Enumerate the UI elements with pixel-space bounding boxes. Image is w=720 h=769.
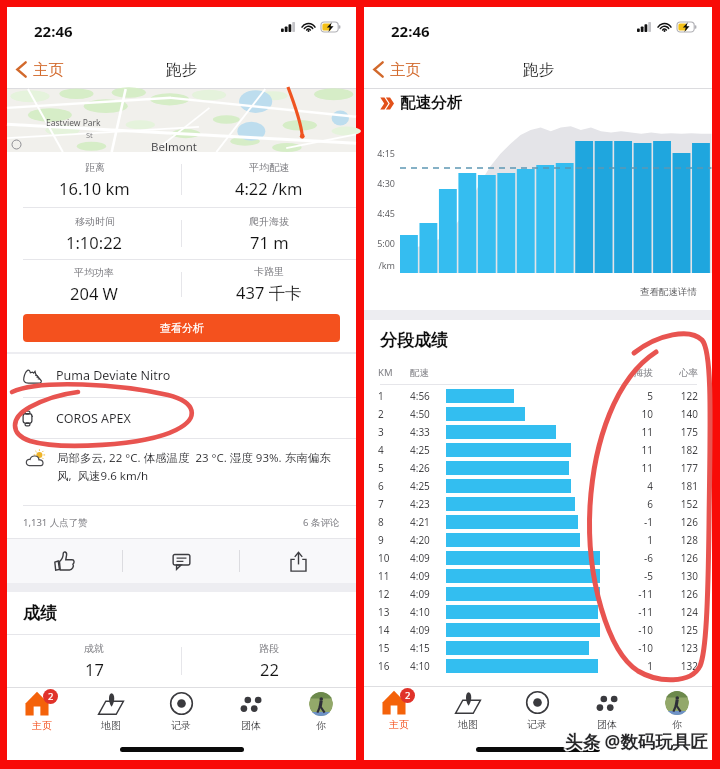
staticText: 204 W <box>70 282 118 304</box>
button[interactable]: 团体 <box>572 687 642 734</box>
staticText: 5 <box>378 461 384 475</box>
button[interactable]: 你 <box>642 687 712 734</box>
staticText: 主页 <box>389 718 409 731</box>
staticText: -10 <box>623 641 653 655</box>
staticText: 跑步 <box>166 60 197 80</box>
button[interactable]: 主页 <box>16 50 64 89</box>
staticText: 团体 <box>597 718 617 731</box>
staticText: 175 <box>664 425 698 439</box>
staticText: 1:10:22 <box>66 231 123 253</box>
staticText: 128 <box>664 533 698 547</box>
button[interactable]: Share <box>240 539 356 583</box>
button[interactable]: 主页 <box>373 50 421 89</box>
staticText: 头条 @数码玩具匠 <box>564 729 707 753</box>
staticText: 移动时间 <box>75 215 115 228</box>
staticText: 5 <box>623 389 653 403</box>
staticText: 爬升海拔 <box>249 215 289 228</box>
staticText: 1 <box>623 659 653 673</box>
staticText: 4:22 /km <box>235 177 303 199</box>
button[interactable]: Puma Deviate Nitro <box>7 354 356 397</box>
staticText: 15 <box>378 641 390 655</box>
staticText: 12 <box>378 587 390 601</box>
staticText: 头条 @数码玩具匠 <box>565 730 708 754</box>
staticText: 头条 @数码玩具匠 <box>566 728 709 752</box>
staticText: 4:25 <box>410 443 430 457</box>
staticText: 地图 <box>458 718 478 731</box>
staticText: 5:00 <box>364 237 395 249</box>
button[interactable]: 2 <box>7 688 76 735</box>
staticText: 126 <box>664 515 698 529</box>
staticText: 你 <box>672 718 682 731</box>
button[interactable]: COROS APEX <box>7 398 356 438</box>
staticText: -10 <box>623 623 653 637</box>
staticText: 4:30 <box>364 177 395 189</box>
staticText: 头条 @数码玩具匠 <box>566 729 709 753</box>
staticText: 4:56 <box>410 389 430 403</box>
staticText: 4:09 <box>410 587 430 601</box>
button[interactable]: 团体 <box>216 688 286 735</box>
staticText: 16 <box>378 659 390 673</box>
staticText: 你 <box>316 719 326 732</box>
staticText: 4:23 <box>410 497 430 511</box>
staticText: 跑步 <box>523 60 554 80</box>
button[interactable]: 记录 <box>146 688 216 735</box>
staticText: 主页 <box>33 60 64 80</box>
staticText: 122 <box>664 389 698 403</box>
staticText: 1 <box>623 533 653 547</box>
staticText: Puma Deviate Nitro <box>56 367 171 384</box>
staticText: 4:15 <box>410 641 430 655</box>
button[interactable]: 2 <box>364 687 433 734</box>
staticText: COROS APEX <box>56 410 131 427</box>
staticText: 126 <box>664 551 698 565</box>
staticText: 查看分析 <box>160 321 204 335</box>
staticText: 124 <box>664 605 698 619</box>
staticText: 头条 @数码玩具匠 <box>566 730 709 754</box>
staticText: 4:09 <box>410 551 430 565</box>
staticText: 22:46 <box>34 21 73 41</box>
staticText: 71 m <box>250 231 289 253</box>
button[interactable]: 地图 <box>433 687 502 734</box>
button[interactable]: 记录 <box>502 687 572 734</box>
staticText: 4 <box>623 479 653 493</box>
staticText: 16.10 km <box>59 177 130 199</box>
staticText: 路段 <box>259 642 279 655</box>
staticText: 距离 <box>85 161 105 174</box>
staticText: 13 <box>378 605 390 619</box>
staticText: Belmont <box>151 139 197 155</box>
staticText: 4:20 <box>410 533 430 547</box>
staticText: 成绩 <box>23 603 57 624</box>
staticText: 头条 @数码玩具匠 <box>565 728 708 752</box>
button[interactable]: 你 <box>286 688 356 735</box>
staticText: 3 <box>378 425 384 439</box>
staticText: 10 <box>623 407 653 421</box>
staticText: -5 <box>623 569 653 583</box>
staticText: -1 <box>623 515 653 529</box>
staticText: 头条 @数码玩具匠 <box>565 729 708 753</box>
staticText: 4:10 <box>410 659 430 673</box>
staticText: 1 <box>378 389 384 403</box>
staticText: /km <box>364 259 395 271</box>
staticText: 11 <box>623 443 653 457</box>
staticText: 配速 <box>410 367 429 379</box>
staticText: 4:25 <box>410 479 430 493</box>
staticText: 437 千卡 <box>236 281 302 304</box>
staticText: 10 <box>378 551 390 565</box>
staticText: 记录 <box>171 719 191 732</box>
staticText: 主页 <box>390 60 421 80</box>
staticText: 配速分析 <box>400 93 462 113</box>
button[interactable]: 查看配速详情 <box>640 286 697 298</box>
staticText: 平均配速 <box>249 161 289 174</box>
staticText: 126 <box>664 587 698 601</box>
button[interactable]: Like <box>7 539 122 583</box>
staticText: 2 <box>405 689 411 702</box>
staticText: 头条 @数码玩具匠 <box>564 730 707 754</box>
button[interactable]: 地图 <box>76 688 146 735</box>
staticText: 125 <box>664 623 698 637</box>
staticText: 卡路里 <box>254 265 284 278</box>
staticText: 2 <box>378 407 384 421</box>
staticText: 记录 <box>527 718 547 731</box>
staticText: 181 <box>664 479 698 493</box>
button[interactable]: 查看分析 <box>23 314 340 342</box>
button[interactable]: Comment <box>123 539 239 583</box>
staticText: 9 <box>378 533 384 547</box>
